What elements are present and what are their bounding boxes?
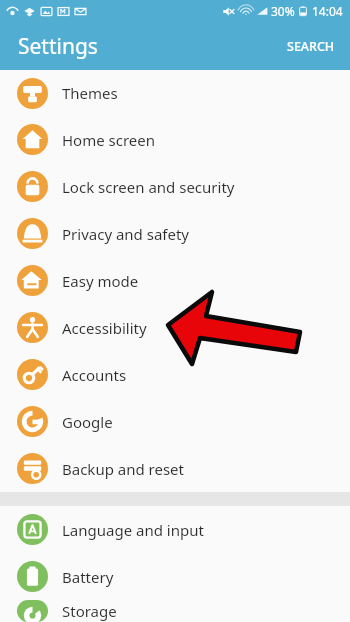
staticText: Backup and reset (62, 459, 184, 479)
button[interactable]: Google (0, 398, 350, 445)
staticText: 30% (271, 3, 295, 19)
button[interactable]: Privacy and safety (0, 210, 350, 257)
button[interactable]: Accessibility (0, 304, 350, 351)
button[interactable]: Lock screen and security (0, 163, 350, 210)
staticText: 14:04 (312, 3, 343, 19)
staticText: Accessibility (62, 318, 147, 338)
button[interactable]: Easy mode (0, 257, 350, 304)
staticText: Accounts (62, 365, 127, 385)
button[interactable]: Home screen (0, 116, 350, 163)
staticText: Battery (62, 567, 114, 587)
button[interactable]: Storage (0, 600, 350, 622)
staticText: Settings (18, 32, 98, 61)
button[interactable]: Battery (0, 553, 350, 600)
button[interactable]: SEARCH (272, 26, 350, 67)
staticText: Themes (62, 83, 118, 103)
staticText: SEARCH (287, 38, 335, 55)
button[interactable]: Language and input (0, 506, 350, 553)
staticText: Google (62, 412, 113, 432)
staticText: Privacy and safety (62, 224, 190, 244)
staticText: Easy mode (62, 271, 139, 291)
button[interactable]: Backup and reset (0, 445, 350, 492)
staticText: Language and input (62, 520, 204, 540)
staticText: Lock screen and security (62, 177, 235, 197)
button[interactable]: Accounts (0, 351, 350, 398)
button[interactable]: Themes (0, 70, 350, 116)
staticText: Home screen (62, 130, 156, 150)
staticText: Storage (62, 601, 117, 621)
